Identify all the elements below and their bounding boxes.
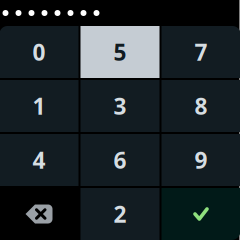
button[interactable]: 1 <box>0 80 78 132</box>
staticText: 4 <box>32 145 45 175</box>
button[interactable]: 7 <box>161 26 240 78</box>
staticText: 5 <box>113 37 126 67</box>
button[interactable]: Confirm <box>161 188 240 240</box>
staticText: 2 <box>113 199 126 229</box>
button[interactable]: 5 <box>80 26 159 78</box>
staticText: 6 <box>113 145 126 175</box>
button[interactable]: 3 <box>80 80 159 132</box>
staticText: 0 <box>32 37 45 67</box>
staticText: 9 <box>194 145 207 175</box>
staticText: 7 <box>194 37 207 67</box>
staticText: 8 <box>194 91 207 121</box>
button[interactable]: Delete <box>0 188 78 240</box>
button[interactable]: 9 <box>161 134 240 186</box>
staticText: 3 <box>113 91 126 121</box>
button[interactable]: 0 <box>0 26 78 78</box>
button[interactable]: 8 <box>161 80 240 132</box>
staticText: 1 <box>32 91 45 121</box>
button[interactable]: 2 <box>80 188 159 240</box>
button[interactable]: 4 <box>0 134 78 186</box>
button[interactable]: 6 <box>80 134 159 186</box>
